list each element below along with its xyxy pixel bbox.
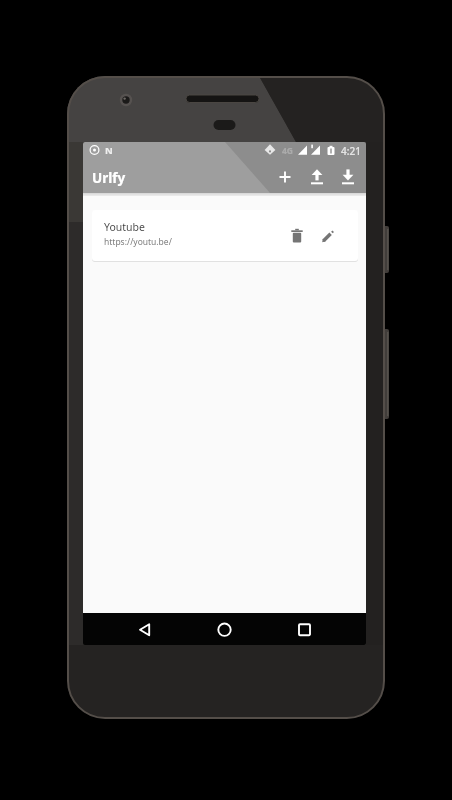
button[interactable] — [289, 617, 319, 643]
button[interactable] — [288, 227, 306, 245]
staticText: 4G — [282, 145, 294, 157]
button[interactable] — [319, 227, 337, 245]
staticText: Urlfy — [92, 169, 126, 187]
button[interactable] — [209, 617, 239, 643]
button[interactable] — [129, 617, 159, 643]
button[interactable] — [342, 169, 358, 185]
button[interactable] — [279, 169, 295, 185]
button[interactable] — [83, 161, 366, 193]
staticText: 4:21 — [341, 144, 361, 158]
staticText: N — [105, 144, 113, 157]
staticText: Youtube — [104, 220, 145, 234]
button[interactable] — [311, 169, 327, 185]
button[interactable] — [92, 210, 358, 261]
staticText: https://youtu.be/ — [104, 236, 172, 248]
